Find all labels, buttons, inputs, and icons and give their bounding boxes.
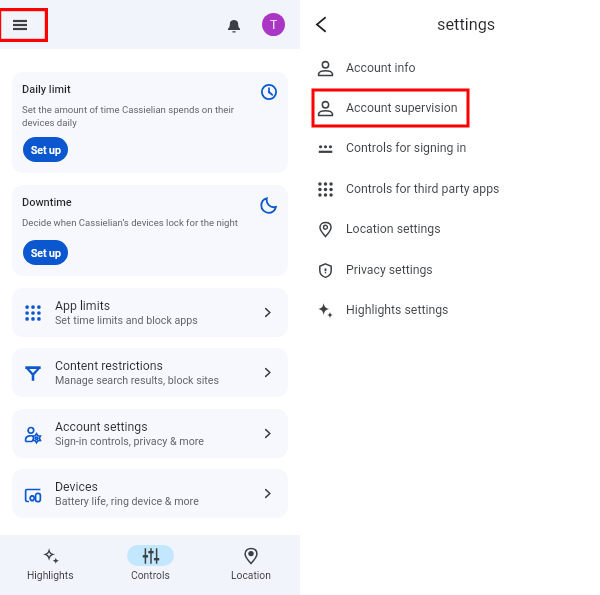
button[interactable]: Location settings [300, 209, 600, 249]
staticText: Account supervision [346, 101, 458, 115]
button[interactable]: Set up [23, 137, 68, 162]
staticText: Manage search results, block sites [55, 374, 219, 387]
button[interactable]: Account info [300, 48, 600, 88]
staticText: Controls for third party apps [346, 182, 500, 196]
staticText: Account settings [55, 420, 148, 434]
staticText: App limits [55, 299, 111, 313]
button[interactable]: Highlights settings [300, 290, 600, 330]
staticText: Highlights [27, 569, 74, 581]
staticText: Daily limit [22, 83, 71, 96]
button[interactable]: Account settings [12, 409, 288, 458]
staticText: Sign-in controls, privacy & more [55, 435, 204, 448]
staticText: Downtime [22, 196, 72, 209]
staticText: Controls [131, 569, 170, 581]
button[interactable]: Account [262, 13, 285, 36]
button[interactable]: Account supervision [300, 88, 600, 128]
staticText: Set the amount of time Cassielian spends… [22, 104, 244, 129]
staticText: Set time limits and block apps [55, 314, 198, 327]
staticText: Set up [31, 247, 61, 259]
staticText: settings [437, 15, 496, 34]
button[interactable]: Downtime [12, 185, 288, 276]
staticText: T [270, 18, 278, 32]
button[interactable]: Set up [23, 240, 68, 265]
staticText: Location settings [346, 222, 441, 236]
button[interactable]: Controls for third party apps [300, 169, 600, 209]
button[interactable]: Back [307, 11, 334, 38]
button[interactable]: Devices [12, 469, 288, 518]
button[interactable]: Daily limit [12, 72, 288, 173]
button[interactable]: Content restrictions [12, 348, 288, 397]
button[interactable]: Notifications [219, 10, 249, 40]
staticText: Devices [55, 480, 98, 494]
staticText: Battery life, ring device & more [55, 495, 199, 508]
staticText: Content restrictions [55, 359, 163, 373]
staticText: Privacy settings [346, 263, 433, 277]
staticText: Account info [346, 61, 416, 75]
staticText: Controls for signing in [346, 141, 467, 155]
button[interactable]: Controls for signing in [300, 128, 600, 168]
button[interactable]: Location [215, 535, 286, 591]
staticText: Highlights settings [346, 303, 449, 317]
button[interactable]: Menu [6, 11, 34, 39]
button[interactable]: Privacy settings [300, 250, 600, 290]
button[interactable]: Highlights [15, 535, 86, 591]
staticText: Decide when Cassielian’s devices lock fo… [22, 217, 238, 228]
staticText: Set up [31, 144, 61, 156]
button[interactable]: App limits [12, 288, 288, 337]
staticText: Location [231, 569, 271, 581]
button[interactable]: Controls [115, 535, 186, 591]
